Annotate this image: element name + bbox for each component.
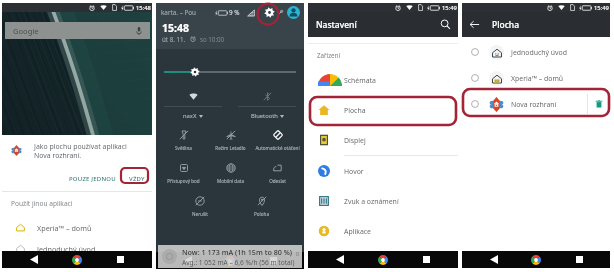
- staticText: so 10:00: [200, 35, 225, 43]
- button[interactable]: Zvuk a oznámení: [308, 186, 458, 216]
- staticText: 03:12: [296, 250, 299, 257]
- staticText: Avg.: 1 052 mA – 6,6 %/h (56 m total): [182, 258, 295, 267]
- button[interactable]: Back: [483, 251, 505, 268]
- button[interactable]: Hovor: [308, 156, 458, 186]
- button[interactable]: Delete: [588, 91, 610, 117]
- button[interactable]: Recents: [568, 251, 590, 268]
- button[interactable]: Recents: [262, 252, 284, 269]
- staticText: Displej: [344, 136, 366, 145]
- button[interactable]: Settings: [264, 7, 275, 18]
- staticText: naxX: [183, 112, 197, 120]
- staticText: 15:48: [136, 4, 151, 12]
- button[interactable]: Home: [219, 252, 241, 269]
- button[interactable]: Home: [525, 251, 547, 268]
- button[interactable]: Wi-Fi: [156, 89, 230, 103]
- staticText: út 8. 11.: [162, 35, 186, 43]
- staticText: Xperia™ – domů: [511, 74, 564, 83]
- button[interactable]: Back: [329, 251, 351, 268]
- staticText: Nova rozhraní: [511, 100, 557, 109]
- staticText: Google: [13, 26, 39, 36]
- staticText: Xperia™ – domů: [37, 223, 92, 233]
- button[interactable]: VŽDY: [123, 173, 151, 185]
- button[interactable]: Google: [5, 22, 150, 39]
- button[interactable]: Automatické otáčení: [254, 127, 301, 160]
- button[interactable]: Světlina: [160, 127, 207, 160]
- button[interactable]: Back: [177, 252, 199, 269]
- staticText: Přístupový bod: [167, 178, 200, 184]
- button[interactable]: Home: [66, 251, 88, 268]
- staticText: Mobilní data: [217, 178, 244, 184]
- button[interactable]: Poloha: [239, 193, 283, 226]
- button[interactable]: Recents: [415, 251, 437, 268]
- button[interactable]: POUZE JEDNOU: [65, 173, 120, 185]
- staticText: Zvuk a oznámení: [344, 197, 399, 206]
- button[interactable]: Přístupový bod: [160, 160, 207, 193]
- staticText: Zařízení: [317, 51, 340, 59]
- button[interactable]: User account: [287, 6, 300, 19]
- staticText: Nova rozhraní.: [34, 151, 82, 160]
- staticText: Plocha: [344, 106, 366, 115]
- button[interactable]: Home: [372, 251, 394, 268]
- staticText: karta. – Pou: [161, 8, 196, 17]
- button[interactable]: Search: [440, 19, 451, 30]
- button[interactable]: Odeslat: [254, 160, 301, 193]
- staticText: Now: 1 173 mA (1h 15m to 80 %): [182, 247, 293, 257]
- staticText: Nastavení: [316, 19, 357, 31]
- staticText: VŽDY: [129, 175, 145, 183]
- staticText: Hovor: [344, 167, 364, 176]
- button[interactable]: Back: [469, 19, 480, 30]
- button[interactable]: Mobilní data: [207, 160, 254, 193]
- staticText: Poloha: [254, 211, 269, 217]
- button[interactable]: Displej: [308, 125, 458, 155]
- staticText: POUZE JEDNOU: [69, 175, 116, 183]
- staticText: Jako plochu používat aplikaci: [34, 142, 127, 151]
- button[interactable]: Back: [23, 251, 45, 268]
- button[interactable]: Aplikace: [308, 216, 458, 246]
- button[interactable]: Jednoduchý úvod: [462, 39, 610, 65]
- staticText: Jednoduchý úvod: [37, 244, 96, 254]
- staticText: Automatické otáčení: [255, 145, 300, 151]
- staticText: Odeslat: [269, 178, 286, 184]
- button[interactable]: Nova rozhraní: [462, 91, 610, 117]
- button[interactable]: Plocha: [308, 95, 458, 125]
- button[interactable]: Xperia™ – domů: [2, 219, 152, 236]
- button[interactable]: Now: 1 173 mA (1h 15m to 80 %): [158, 245, 302, 268]
- staticText: Použít jinou aplikaci: [11, 199, 73, 208]
- button[interactable]: Schémata: [308, 65, 458, 95]
- staticText: 15:49: [594, 4, 609, 12]
- staticText: Jednoduchý úvod: [511, 48, 567, 57]
- button[interactable]: Bluetooth: [230, 89, 304, 103]
- button[interactable]: Režim Letadlo: [207, 127, 254, 160]
- staticText: Bluetooth: [251, 112, 278, 120]
- button[interactable]: Jednoduchý úvod: [2, 240, 152, 257]
- button[interactable]: Nerušit: [178, 193, 222, 226]
- staticText: Světlina: [175, 145, 192, 151]
- staticText: 9 %: [229, 8, 240, 17]
- staticText: 15:48: [162, 21, 189, 35]
- button[interactable]: Xperia™ – domů: [462, 65, 610, 91]
- staticText: Aplikace: [344, 227, 371, 236]
- button[interactable]: Recents: [109, 251, 131, 268]
- staticText: Plocha: [492, 19, 520, 31]
- staticText: Schémata: [344, 76, 376, 85]
- staticText: 15:49: [442, 4, 457, 12]
- staticText: Nerušit: [192, 211, 208, 217]
- staticText: Režim Letadlo: [215, 145, 246, 151]
